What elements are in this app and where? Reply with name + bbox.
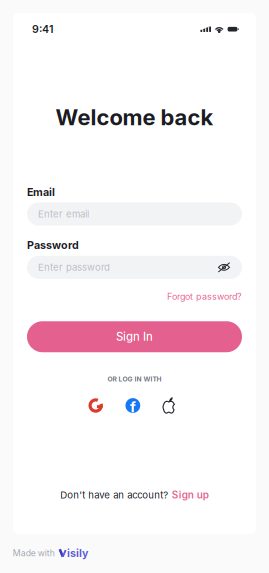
staticText: Email [27, 186, 55, 198]
staticText: OR LOG IN WITH [107, 375, 161, 383]
staticText: Enter email [38, 208, 89, 220]
button[interactable]: Continue with Google [84, 394, 107, 417]
staticText: Welcome back [55, 104, 213, 131]
staticText: Forgot password? [167, 291, 242, 302]
staticText: Don't have an account? [60, 489, 168, 501]
staticText: Made with [13, 548, 55, 558]
button[interactable]: Show password [217, 261, 231, 273]
button[interactable]: Forgot password? [167, 291, 242, 302]
button[interactable]: Sign up [172, 489, 209, 501]
staticText: Enter password [38, 261, 110, 273]
button[interactable]: Continue with Apple [159, 394, 179, 417]
staticText: Password [27, 239, 79, 251]
button[interactable]: Continue with Facebook [121, 394, 144, 417]
button[interactable]: Sign In [13, 321, 256, 352]
staticText: isily [67, 546, 88, 559]
staticText: f [130, 398, 136, 416]
staticText: Sign up [172, 489, 209, 501]
staticText: Sign In [116, 330, 153, 344]
staticText: 9:41 [32, 23, 54, 36]
